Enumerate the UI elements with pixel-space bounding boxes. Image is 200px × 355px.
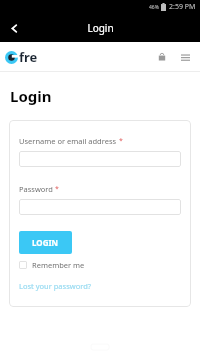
button[interactable]: Menu <box>176 48 194 66</box>
button[interactable]: Home <box>5 48 38 66</box>
button[interactable]: Back <box>0 14 28 42</box>
staticText: LOGIN <box>32 237 59 248</box>
button[interactable]: Text field <box>19 199 181 215</box>
staticText: * <box>55 184 59 194</box>
staticText: Login <box>87 21 114 35</box>
button[interactable]: Cart <box>153 48 171 66</box>
staticText: Remember me <box>32 260 85 270</box>
staticText: 46% <box>149 4 159 11</box>
button[interactable]: LOGIN <box>19 231 72 254</box>
staticText: Login <box>10 86 52 106</box>
staticText: * <box>119 136 123 146</box>
staticText: fre <box>19 48 38 66</box>
button[interactable]: Text field <box>19 151 181 167</box>
staticText: Password <box>19 184 53 194</box>
staticText: Lost your password? <box>19 281 92 291</box>
button[interactable]: Remember me <box>19 260 85 270</box>
staticText: Username or email address <box>19 136 117 146</box>
staticText: 2:59 PM <box>169 2 196 12</box>
button[interactable]: Lost your password? <box>19 281 92 291</box>
